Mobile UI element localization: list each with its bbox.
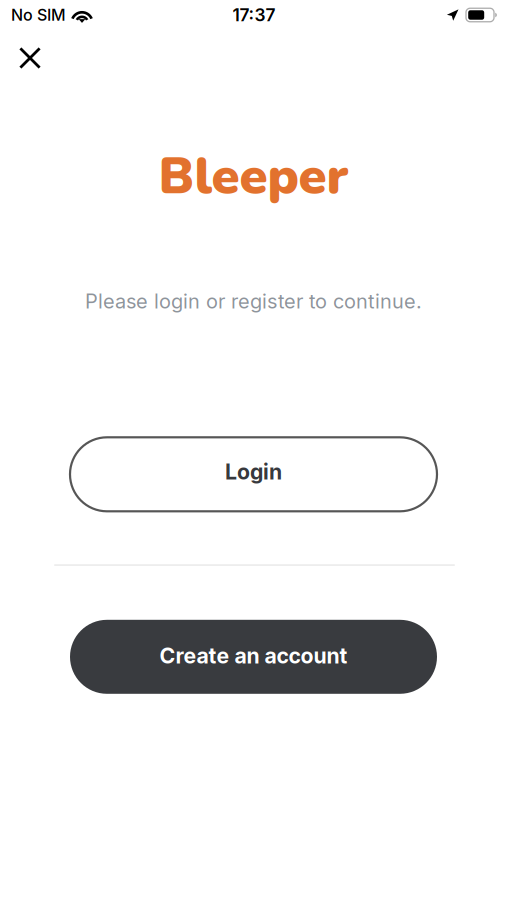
staticText: No SIM	[11, 5, 66, 25]
button[interactable]: Close	[0, 30, 57, 81]
staticText: 17:37	[232, 4, 275, 25]
button[interactable]: Login	[70, 437, 437, 511]
staticText: Please login or register to continue.	[85, 289, 422, 313]
staticText: Bleeper	[158, 142, 348, 211]
staticText: Create an account	[159, 643, 347, 669]
button[interactable]: Create an account	[70, 620, 437, 694]
staticText: Login	[225, 459, 282, 485]
